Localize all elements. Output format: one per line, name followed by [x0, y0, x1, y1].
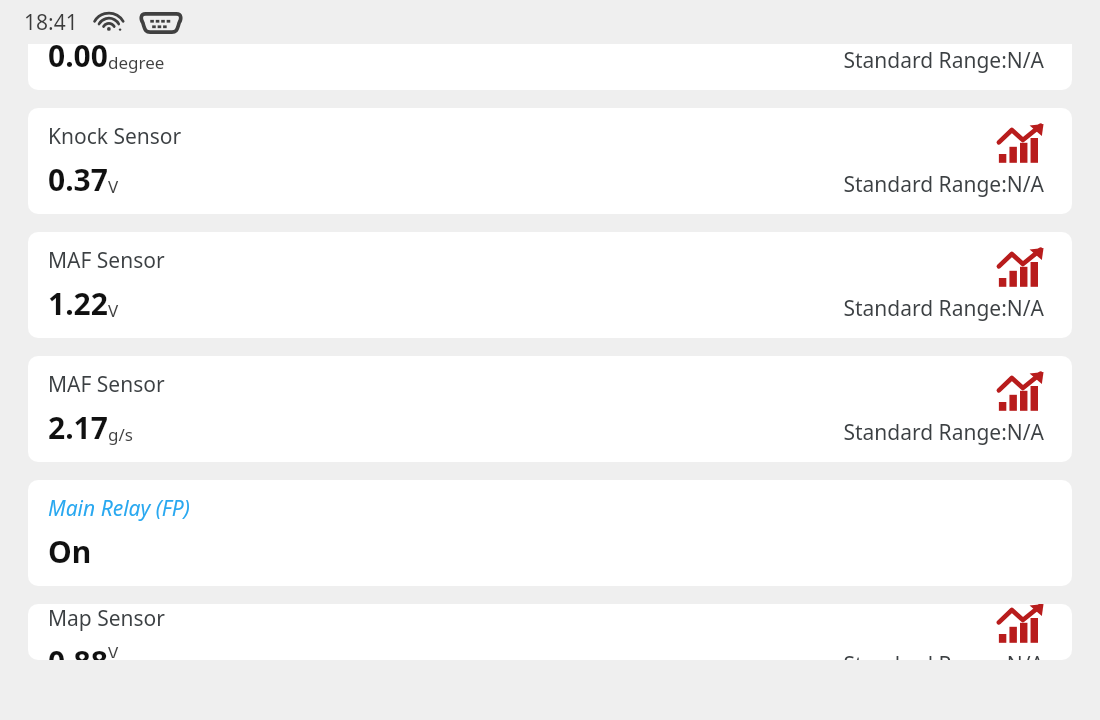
staticText: Standard Range:N/A	[843, 294, 1044, 323]
staticText: V	[108, 641, 119, 658]
staticText: 0.88	[48, 641, 108, 660]
button[interactable]: Main Relay (FP)	[28, 480, 1072, 586]
staticText: V	[108, 299, 119, 322]
staticText: Standard Range:N/A	[843, 170, 1044, 199]
button[interactable]: MAF Sensor	[28, 356, 1072, 462]
staticText: Standard Range:N/A	[843, 418, 1044, 447]
button[interactable]: Knock Sensor	[28, 108, 1072, 214]
other: Show chart	[996, 604, 1044, 644]
staticText: 18:41	[24, 8, 78, 37]
staticText: 1.22	[48, 283, 108, 324]
staticText: 0.37	[48, 159, 108, 200]
other: OBD connector	[140, 11, 182, 35]
staticText: Main Relay (FP)	[48, 494, 190, 523]
other: Wi-Fi	[96, 12, 124, 34]
staticText: Knock Sensor	[48, 122, 182, 151]
button[interactable]: MAF Sensor	[28, 232, 1072, 338]
staticText: Standard Range:N/A	[843, 46, 1044, 75]
button[interactable]: Timing Advance	[28, 44, 1072, 90]
other: Show chart	[996, 372, 1044, 412]
other: Show chart	[996, 124, 1044, 164]
button[interactable]: Map Sensor	[28, 604, 1072, 660]
staticText: V	[108, 175, 119, 198]
staticText: g/s	[108, 423, 133, 446]
staticText: degree	[108, 51, 165, 74]
staticText: Standard Range:N/A	[843, 650, 1044, 660]
staticText: 2.17	[48, 407, 108, 448]
staticText: MAF Sensor	[48, 246, 165, 275]
staticText: 0.00	[48, 44, 108, 76]
staticText: MAF Sensor	[48, 370, 165, 399]
staticText: On	[48, 531, 92, 572]
staticText: Map Sensor	[48, 604, 165, 633]
other: Show chart	[996, 248, 1044, 288]
